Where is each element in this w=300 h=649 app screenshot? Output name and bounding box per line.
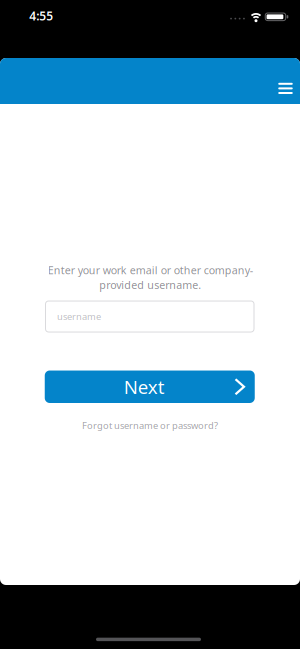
staticText: Next	[124, 374, 165, 399]
button[interactable]: Menu	[272, 76, 298, 100]
staticText: 4:55	[29, 8, 53, 24]
staticText: Enter your work email or other company- …	[47, 263, 252, 292]
staticText: Forgot username or password?	[82, 419, 218, 432]
button[interactable]: Next	[45, 370, 255, 403]
staticText: username	[57, 310, 101, 323]
button[interactable]: username	[45, 300, 254, 332]
button[interactable]: Forgot username or password?	[82, 419, 218, 432]
